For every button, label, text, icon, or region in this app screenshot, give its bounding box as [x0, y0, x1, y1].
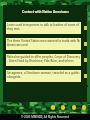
button[interactable]: Contact with Native Americans — [3, 8, 87, 16]
staticText: Cards — [70, 110, 77, 113]
staticText: The three United States men wanted to tr… — [7, 39, 80, 43]
button[interactable]: Lewis used interpreters to talk to leade… — [6, 22, 81, 34]
staticText: Relied on guided to offer peoples, Corps… — [7, 55, 80, 59]
staticText: Americans and — [7, 43, 28, 47]
button[interactable]: Link — [81, 105, 86, 113]
button[interactable]: Cards — [70, 105, 77, 113]
button[interactable]: Sacagawea, a Shoshone woman, traveled as… — [6, 70, 81, 82]
staticText: Link — [81, 110, 86, 113]
staticText: alongside. — [7, 75, 22, 79]
staticText: Home — [49, 110, 56, 113]
staticText: © 2023 MMXXIII, All Rights Reserved — [21, 115, 69, 119]
staticText: - Given Food by Shoshone, Yale River, an… — [7, 59, 74, 63]
staticText: Back — [60, 110, 66, 113]
staticText: Sacagawea, a Shoshone woman, traveled as… — [7, 71, 80, 75]
button[interactable]: Back — [60, 105, 66, 113]
staticText: Contact with Native Americans — [22, 10, 69, 14]
staticText: they met. — [7, 27, 21, 31]
button[interactable]: The three United States men wanted to tr… — [6, 38, 81, 50]
staticText: Lewis used interpreters to talk to leade… — [7, 23, 80, 27]
button[interactable]: Relied on guided to offer peoples, Corps… — [6, 54, 81, 66]
button[interactable]: Home — [49, 105, 56, 113]
